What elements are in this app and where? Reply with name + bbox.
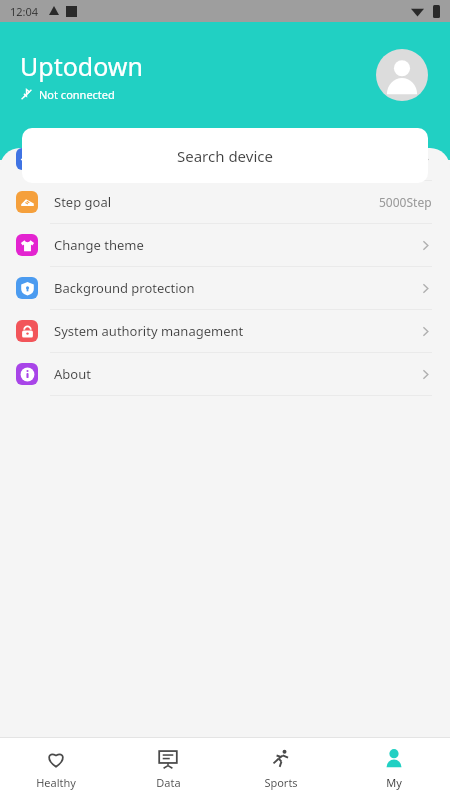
button[interactable]: Step goal: [0, 181, 450, 223]
button[interactable]: Device settings: [0, 138, 450, 180]
button[interactable]: Sports: [224, 738, 337, 800]
staticText: Background protection: [54, 279, 419, 297]
button[interactable]: Data: [112, 738, 224, 800]
button[interactable]: Change theme: [0, 224, 450, 266]
staticText: Change theme: [54, 236, 419, 254]
staticText: 5000Step: [379, 194, 432, 210]
staticText: 12:04: [10, 4, 39, 19]
button[interactable]: My: [337, 738, 450, 800]
button[interactable]: Search device: [22, 128, 428, 183]
staticText: Data: [156, 775, 181, 790]
staticText: About: [54, 365, 419, 383]
staticText: My: [386, 775, 402, 790]
staticText: Healthy: [36, 775, 76, 790]
button[interactable]: About: [0, 353, 450, 395]
button[interactable]: Healthy: [0, 738, 112, 800]
staticText: Search device: [177, 146, 273, 166]
staticText: Uptodown: [20, 49, 143, 83]
button[interactable]: Background protection: [0, 267, 450, 309]
button[interactable]: Profile: [376, 49, 428, 101]
staticText: Step goal: [54, 193, 379, 211]
staticText: Sports: [264, 775, 298, 790]
staticText: System authority management: [54, 322, 419, 340]
staticText: Not connected: [39, 87, 115, 102]
staticText: Device settings: [54, 150, 419, 168]
button[interactable]: System authority management: [0, 310, 450, 352]
